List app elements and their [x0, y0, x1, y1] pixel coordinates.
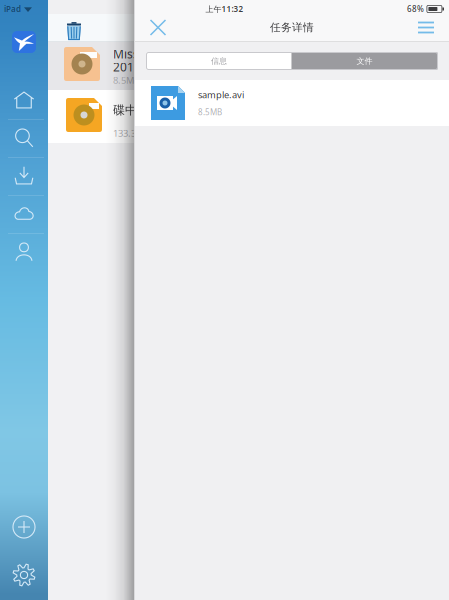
button[interactable]: Home [0, 81, 48, 119]
staticText: sample.avi [198, 88, 244, 101]
button[interactable]: Delete [60, 14, 88, 42]
staticText: 8.5MB [198, 107, 222, 117]
button[interactable]: 文件 [291, 52, 437, 69]
button[interactable]: Search [0, 119, 48, 157]
staticText: 8.5MB [113, 74, 140, 86]
staticText: 68% [407, 4, 424, 14]
button[interactable]: Pikpak [12, 31, 36, 53]
staticText: 信息 [211, 56, 227, 66]
button[interactable]: Add [0, 512, 48, 542]
button[interactable]: Settings [0, 560, 48, 590]
staticText: 任务详情 [270, 21, 314, 34]
staticText: Miss [113, 46, 139, 62]
button[interactable]: Close [139, 14, 177, 41]
staticText: 133.3 [113, 127, 136, 139]
staticText: 文件 [356, 56, 372, 66]
button[interactable]: 信息 [146, 52, 291, 69]
button[interactable]: Account [0, 233, 48, 271]
button[interactable]: Miss [48, 42, 134, 90]
staticText: 2015 [113, 59, 141, 75]
button[interactable]: Menu [407, 14, 445, 41]
button[interactable]: Cloud Storage [0, 195, 48, 233]
staticText: 上午11:32 [205, 4, 243, 14]
staticText: iPad [4, 4, 21, 14]
button[interactable]: 碟中 [48, 90, 134, 143]
staticText: 碟中 [113, 103, 137, 118]
button[interactable]: Downloads [0, 157, 48, 195]
